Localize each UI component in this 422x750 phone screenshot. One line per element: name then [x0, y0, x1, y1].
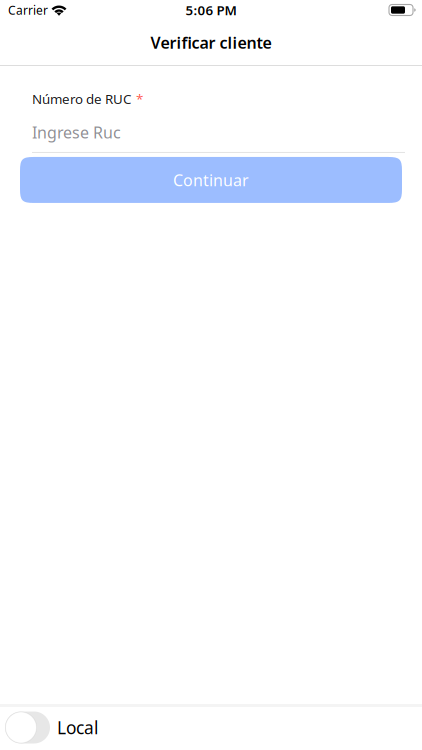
staticText: Número de RUC: [32, 90, 131, 108]
button[interactable]: Continuar: [20, 157, 402, 203]
staticText: Local: [57, 716, 98, 739]
staticText: Verificar cliente: [150, 32, 271, 53]
staticText: Continuar: [173, 169, 249, 190]
staticText: 5:06 PM: [185, 1, 236, 19]
staticText: Carrier: [8, 2, 48, 18]
staticText: *: [136, 90, 143, 108]
staticText: Ingrese Ruc: [32, 122, 121, 143]
button[interactable]: Local: [5, 711, 50, 743]
